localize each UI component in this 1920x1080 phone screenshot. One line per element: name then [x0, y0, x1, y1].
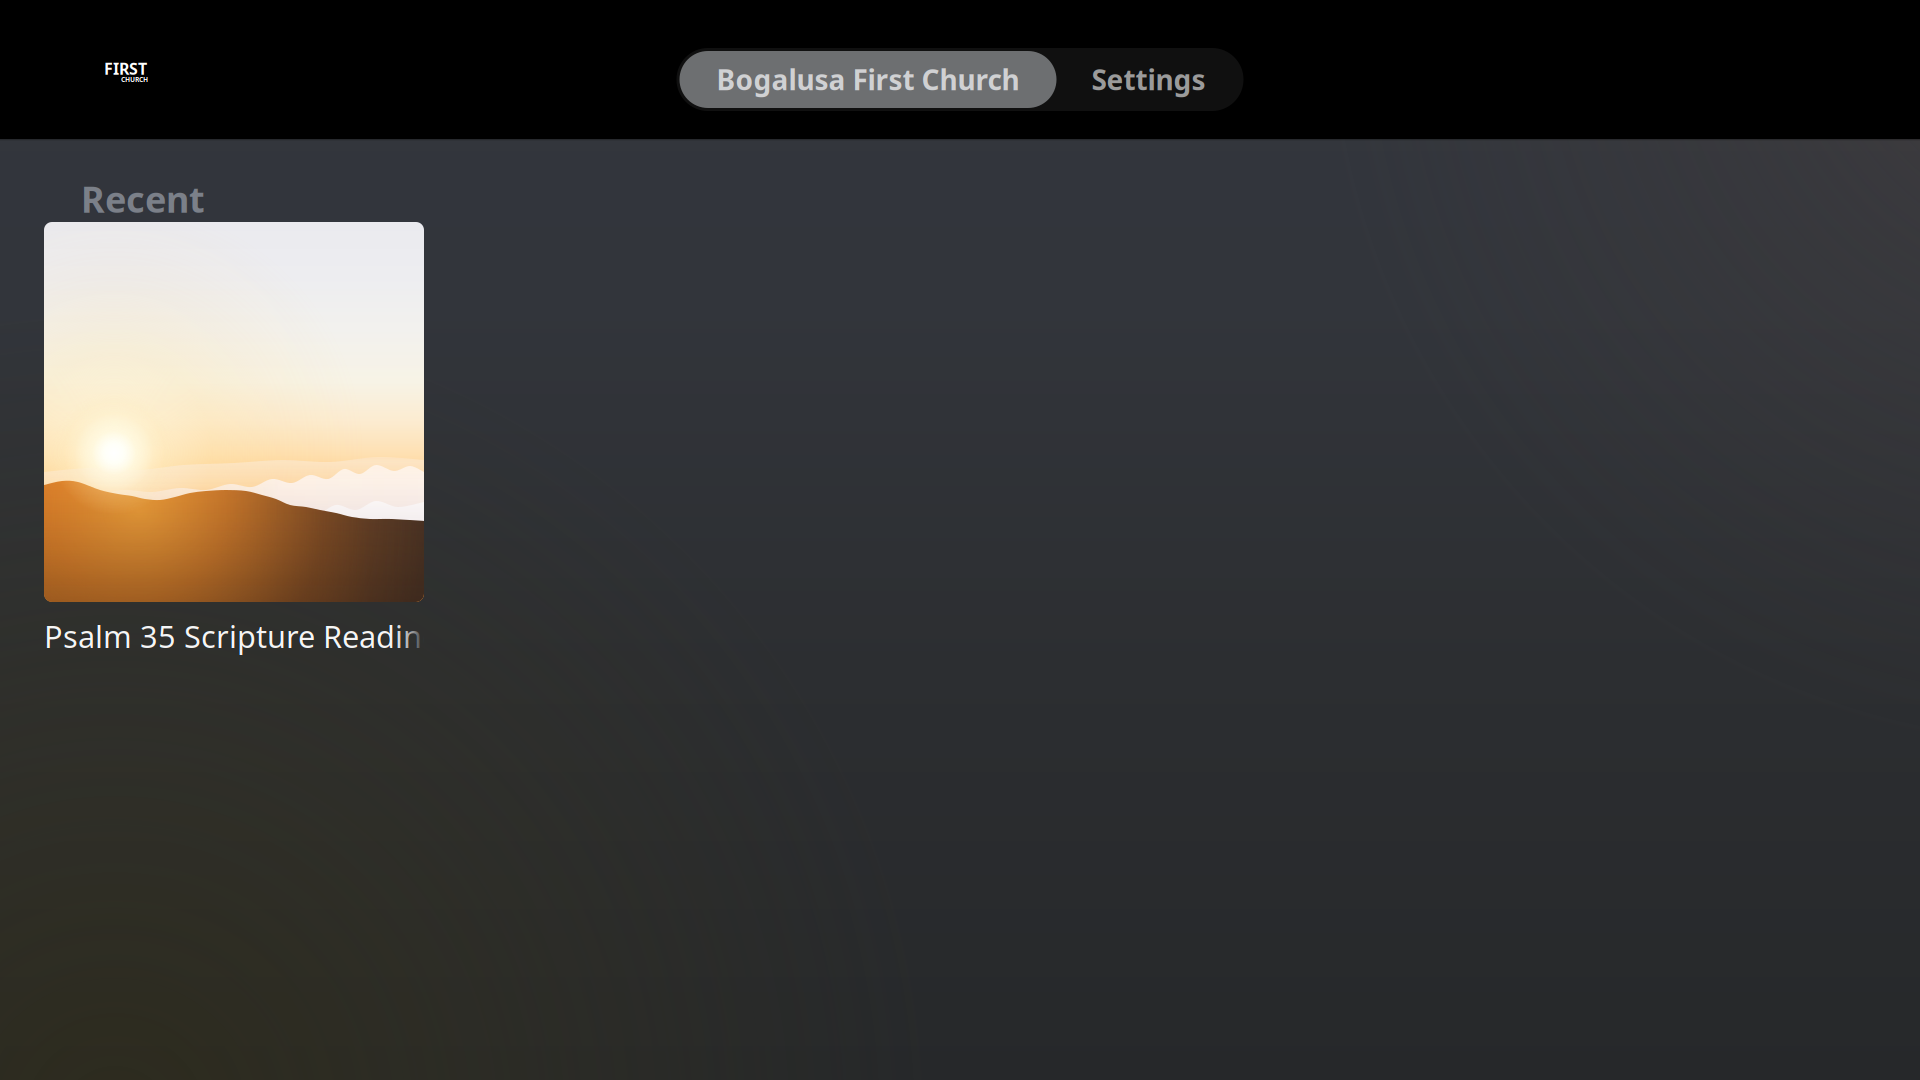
- staticText: Recent: [81, 175, 205, 223]
- staticText: Settings: [1091, 61, 1205, 98]
- staticText: FIRST: [104, 58, 147, 79]
- staticText: Psalm 35 Scripture Reading: [44, 616, 441, 656]
- button[interactable]: Bogalusa First Church: [679, 51, 1056, 108]
- staticText: CHURCH: [121, 75, 148, 84]
- staticText: Bogalusa First Church: [716, 61, 1019, 98]
- button[interactable]: Settings: [1056, 51, 1240, 108]
- button[interactable]: Psalm 35 Scripture Reading: [44, 222, 424, 656]
